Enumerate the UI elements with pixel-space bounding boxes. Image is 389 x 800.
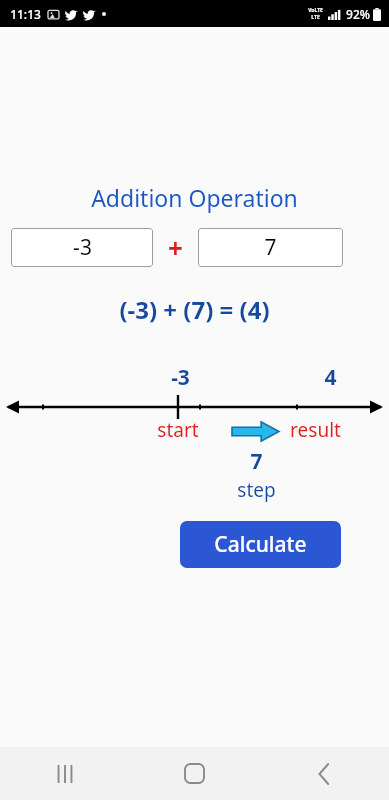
button[interactable]: 7 bbox=[198, 228, 343, 267]
staticText: Calculate bbox=[214, 530, 307, 559]
button[interactable]: -3 bbox=[11, 228, 153, 267]
staticText: start bbox=[157, 417, 199, 443]
staticText: 11:13 bbox=[10, 6, 41, 22]
button[interactable]: Recent apps bbox=[0, 747, 129, 800]
staticText: step bbox=[237, 477, 276, 503]
staticText: Addition Operation bbox=[91, 182, 298, 213]
staticText: VoLTE bbox=[308, 7, 323, 14]
staticText: 4 bbox=[324, 363, 337, 392]
staticText: + bbox=[168, 230, 183, 265]
button[interactable]: Back bbox=[259, 747, 389, 800]
staticText: 92% bbox=[346, 6, 370, 22]
staticText: 7 bbox=[250, 447, 263, 476]
staticText: 7 bbox=[264, 233, 277, 262]
staticText: LTE bbox=[311, 14, 320, 21]
staticText: -3 bbox=[171, 363, 190, 392]
button[interactable]: Calculate bbox=[180, 521, 341, 568]
button[interactable]: Home bbox=[129, 747, 259, 800]
staticText: result bbox=[290, 417, 341, 443]
staticText: (-3) + (7) = (4) bbox=[119, 293, 270, 326]
staticText: -3 bbox=[73, 233, 92, 262]
